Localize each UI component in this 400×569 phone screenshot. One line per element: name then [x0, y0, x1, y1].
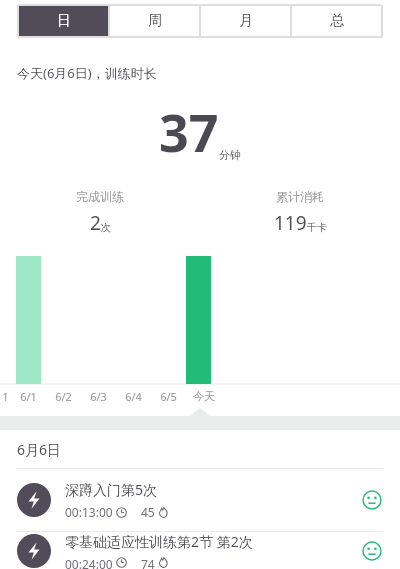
- button[interactable]: 月: [201, 6, 290, 36]
- staticText: 6月6日: [17, 440, 62, 459]
- staticText: 6/4: [125, 389, 142, 404]
- staticText: 零基础适应性训练第2节 第2次: [65, 532, 253, 551]
- staticText: 45: [141, 504, 155, 520]
- staticText: 2: [90, 210, 101, 236]
- staticText: 6/5: [160, 389, 177, 404]
- staticText: 周: [148, 12, 162, 30]
- staticText: 日: [57, 12, 71, 30]
- staticText: 6/3: [90, 389, 107, 404]
- staticText: 00:24:00: [65, 556, 113, 569]
- button[interactable]: 深蹲入门第5次: [0, 469, 400, 531]
- staticText: 次: [101, 221, 111, 234]
- staticText: 119: [274, 210, 307, 236]
- staticText: 00:13:00: [65, 504, 113, 520]
- staticText: 月: [239, 12, 253, 30]
- staticText: 今天(6月6日)，训练时长: [17, 64, 157, 82]
- staticText: 6/2: [55, 389, 72, 404]
- button[interactable]: 日: [19, 6, 108, 36]
- button[interactable]: 零基础适应性训练第2节 第2次: [0, 532, 400, 569]
- staticText: 今天: [193, 389, 215, 403]
- staticText: 6/1: [20, 389, 37, 404]
- staticText: 74: [141, 556, 155, 569]
- staticText: 分钟: [219, 148, 241, 162]
- staticText: 37: [159, 96, 219, 167]
- button[interactable]: 总: [292, 6, 381, 36]
- staticText: 千卡: [307, 221, 327, 234]
- staticText: 累计消耗: [276, 189, 324, 204]
- button[interactable]: Mood rating: [361, 540, 383, 562]
- staticText: 1: [2, 389, 9, 404]
- button[interactable]: 周: [110, 6, 199, 36]
- staticText: 总: [330, 12, 344, 30]
- staticText: 深蹲入门第5次: [65, 480, 158, 499]
- staticText: 完成训练: [76, 189, 124, 204]
- button[interactable]: Mood rating: [361, 489, 383, 511]
